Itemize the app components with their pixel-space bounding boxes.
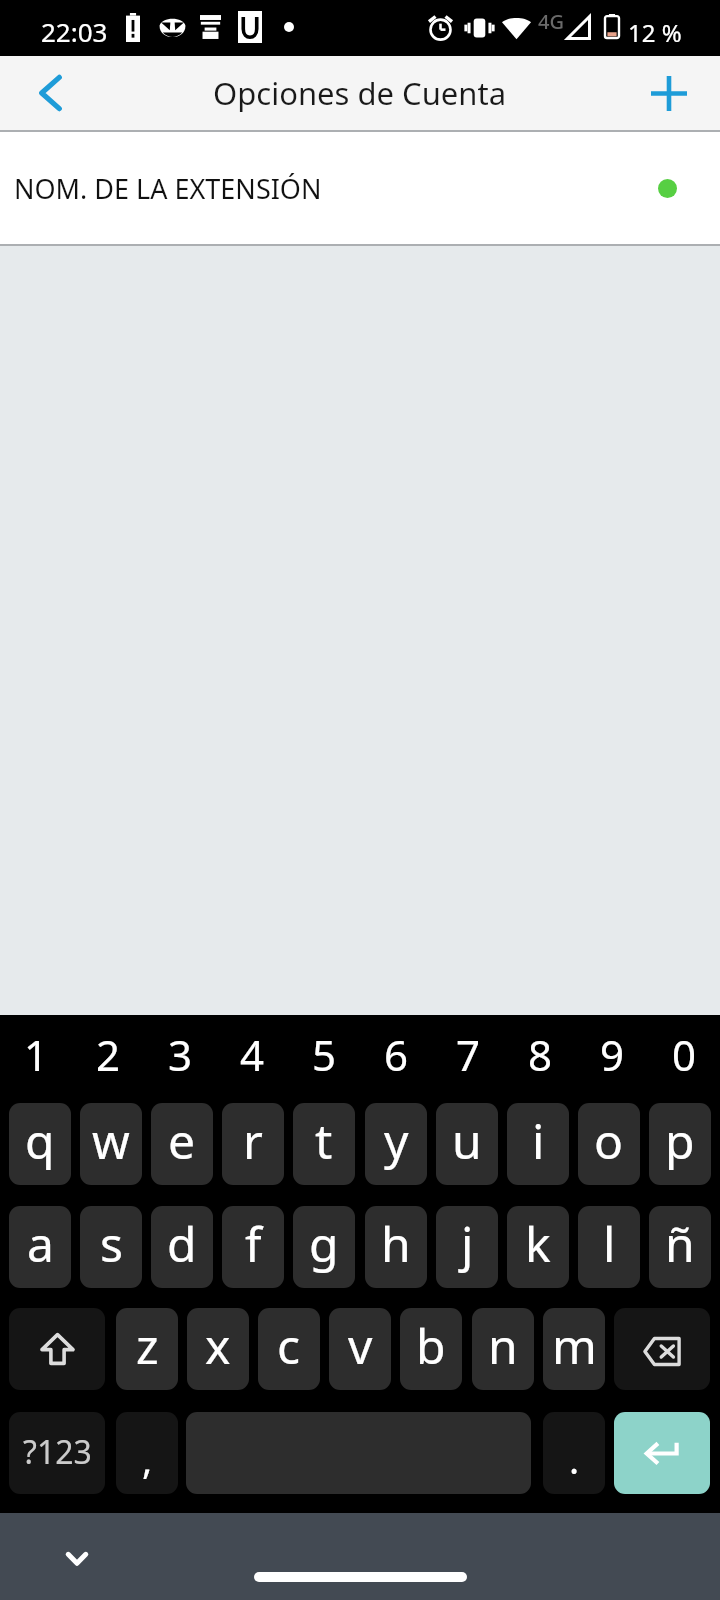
staticText: 6 bbox=[384, 1026, 409, 1083]
button[interactable]: 5 bbox=[288, 1015, 360, 1103]
staticText: 22:03 bbox=[41, 14, 108, 49]
button[interactable]: t bbox=[293, 1103, 355, 1185]
button[interactable]: , bbox=[116, 1412, 178, 1494]
button[interactable]: p bbox=[649, 1103, 711, 1185]
button[interactable]: q bbox=[9, 1103, 71, 1185]
button[interactable]: k bbox=[507, 1206, 569, 1288]
staticText: z bbox=[136, 1313, 159, 1378]
button[interactable]: Shift bbox=[9, 1308, 105, 1390]
staticText: g bbox=[309, 1211, 339, 1276]
staticText: y bbox=[384, 1108, 409, 1173]
button[interactable]: ?123 bbox=[9, 1412, 105, 1494]
button[interactable]: ñ bbox=[649, 1206, 711, 1288]
staticText: d bbox=[167, 1211, 197, 1276]
button[interactable]: v bbox=[329, 1308, 391, 1390]
button[interactable]: e bbox=[151, 1103, 213, 1185]
staticText: n bbox=[488, 1313, 518, 1378]
button[interactable]: 6 bbox=[360, 1015, 432, 1103]
staticText: 7 bbox=[456, 1026, 481, 1083]
button[interactable]: m bbox=[543, 1308, 605, 1390]
staticText: e bbox=[168, 1108, 196, 1173]
button[interactable]: z bbox=[116, 1308, 178, 1390]
button[interactable]: 2 bbox=[72, 1015, 144, 1103]
button[interactable]: n bbox=[472, 1308, 534, 1390]
button[interactable]: 3 bbox=[144, 1015, 216, 1103]
button[interactable]: Back bbox=[8, 56, 92, 130]
staticText: w bbox=[92, 1108, 130, 1173]
staticText: m bbox=[552, 1313, 597, 1378]
button[interactable]: 4 bbox=[216, 1015, 288, 1103]
button[interactable]: r bbox=[222, 1103, 284, 1185]
button[interactable]: 7 bbox=[432, 1015, 504, 1103]
button[interactable]: w bbox=[80, 1103, 142, 1185]
staticText: 4 bbox=[240, 1026, 265, 1083]
button[interactable]: i bbox=[507, 1103, 569, 1185]
button[interactable]: Enter bbox=[614, 1412, 710, 1494]
button[interactable]: j bbox=[436, 1206, 498, 1288]
staticText: ñ bbox=[665, 1211, 695, 1276]
button[interactable]: Hide keyboard bbox=[48, 1533, 106, 1579]
staticText: f bbox=[245, 1211, 262, 1276]
staticText: l bbox=[603, 1211, 616, 1276]
staticText: 5 bbox=[312, 1026, 337, 1083]
staticText: k bbox=[525, 1211, 551, 1276]
staticText: s bbox=[100, 1211, 123, 1276]
staticText: , bbox=[142, 1433, 153, 1485]
button[interactable]: 1 bbox=[0, 1015, 72, 1103]
staticText: 4G bbox=[538, 8, 564, 35]
staticText: 8 bbox=[528, 1026, 553, 1083]
button[interactable]: h bbox=[365, 1206, 427, 1288]
button[interactable]: NOM. DE LA EXTENSIÓN bbox=[0, 132, 720, 244]
staticText: a bbox=[27, 1211, 54, 1276]
staticText: b bbox=[416, 1313, 446, 1378]
staticText: u bbox=[452, 1108, 482, 1173]
button[interactable]: u bbox=[436, 1103, 498, 1185]
button[interactable]: 9 bbox=[576, 1015, 648, 1103]
staticText: c bbox=[277, 1313, 301, 1378]
staticText: 1 bbox=[24, 1026, 49, 1083]
staticText: v bbox=[348, 1313, 373, 1378]
button[interactable]: a bbox=[9, 1206, 71, 1288]
button[interactable]: c bbox=[258, 1308, 320, 1390]
staticText: 3 bbox=[168, 1026, 193, 1083]
staticText: x bbox=[205, 1313, 231, 1378]
button[interactable]: o bbox=[578, 1103, 640, 1185]
button[interactable]: s bbox=[80, 1206, 142, 1288]
button[interactable]: x bbox=[187, 1308, 249, 1390]
button[interactable]: Add bbox=[627, 56, 711, 130]
staticText: i bbox=[532, 1108, 545, 1173]
staticText: 0 bbox=[672, 1026, 697, 1083]
button[interactable]: 0 bbox=[648, 1015, 720, 1103]
button[interactable]: f bbox=[222, 1206, 284, 1288]
button[interactable]: . bbox=[543, 1412, 605, 1494]
staticText: Opciones de Cuenta bbox=[213, 72, 507, 114]
button[interactable]: Backspace bbox=[614, 1308, 710, 1390]
button[interactable]: 8 bbox=[504, 1015, 576, 1103]
staticText: o bbox=[594, 1108, 624, 1173]
staticText: NOM. DE LA EXTENSIÓN bbox=[14, 170, 322, 207]
staticText: . bbox=[569, 1433, 580, 1485]
staticText: q bbox=[25, 1108, 55, 1173]
button[interactable]: g bbox=[293, 1206, 355, 1288]
staticText: r bbox=[243, 1108, 263, 1173]
staticText: p bbox=[665, 1108, 695, 1173]
button[interactable]: l bbox=[578, 1206, 640, 1288]
button[interactable]: d bbox=[151, 1206, 213, 1288]
staticText: t bbox=[315, 1108, 333, 1173]
staticText: h bbox=[381, 1211, 411, 1276]
button[interactable]: y bbox=[365, 1103, 427, 1185]
staticText: 12 % bbox=[628, 16, 682, 49]
button[interactable]: b bbox=[400, 1308, 462, 1390]
staticText: ?123 bbox=[23, 1430, 92, 1474]
staticText: j bbox=[461, 1211, 474, 1276]
staticText: 2 bbox=[96, 1026, 121, 1083]
staticText: 9 bbox=[600, 1026, 625, 1083]
